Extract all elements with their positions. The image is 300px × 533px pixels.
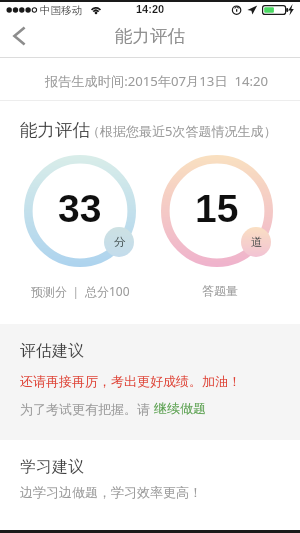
staticText: 中国移动 [40,4,82,17]
staticText: 学习建议 [20,457,84,477]
staticText: （根据您最近5次答题情况生成） [87,122,277,140]
staticText: 预测分 ｜ 总分100 [31,283,130,299]
staticText: 评估建议 [20,341,84,361]
staticText: 为了考试更有把握。请 [20,400,154,418]
button[interactable]: Back [0,20,40,57]
staticText: 33 [58,187,102,231]
button[interactable]: 继续做题 [154,400,206,416]
staticText: 15 [195,187,239,231]
staticText: 边学习边做题，学习效率更高！ [20,484,202,500]
staticText: 能力评估 [115,25,185,47]
staticText: 14:20 [136,3,165,15]
staticText: 还请再接再厉，考出更好成绩。加油！ [20,373,241,389]
staticText: 报告生成时间:2015年07月13日 14:20 [45,72,269,90]
staticText: 能力评估 [20,119,90,141]
staticText: 分 [114,235,126,249]
staticText: 道 [251,235,263,249]
staticText: 答题量 [202,283,238,298]
